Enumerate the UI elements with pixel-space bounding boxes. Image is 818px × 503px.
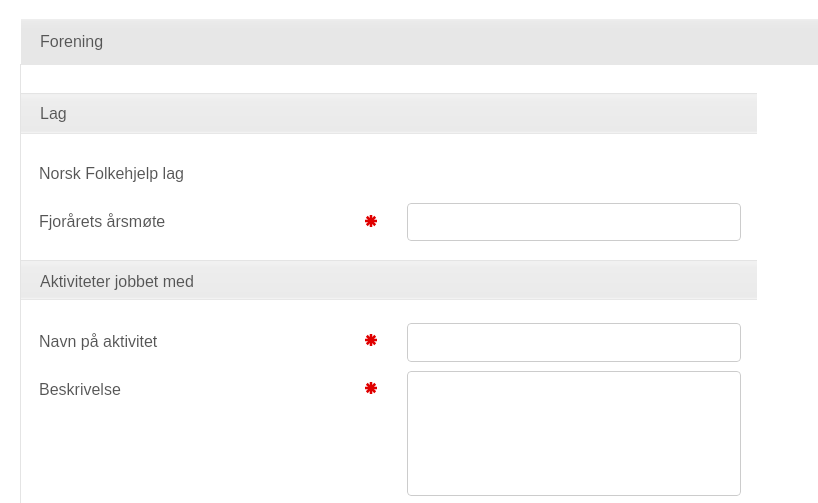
staticText: Norsk Folkehjelp lag xyxy=(39,165,184,183)
button[interactable]: Fjorårets årsmøte xyxy=(407,203,741,241)
button[interactable]: Beskrivelse xyxy=(407,371,741,496)
staticText: Lag xyxy=(40,105,67,123)
staticText: Fjorårets årsmøte xyxy=(39,213,166,231)
other: Required field xyxy=(365,215,377,227)
button[interactable]: Forening xyxy=(21,19,818,65)
staticText: Beskrivelse xyxy=(39,381,121,399)
button[interactable]: Lag xyxy=(21,93,757,134)
button[interactable]: Aktiviteter jobbet med xyxy=(21,260,757,300)
staticText: Forening xyxy=(40,33,104,51)
button[interactable]: Navn på aktivitet xyxy=(407,323,741,362)
staticText: Aktiviteter jobbet med xyxy=(40,273,194,291)
staticText: Navn på aktivitet xyxy=(39,333,158,351)
other: Required field xyxy=(365,382,377,394)
other: Required field xyxy=(365,334,377,346)
